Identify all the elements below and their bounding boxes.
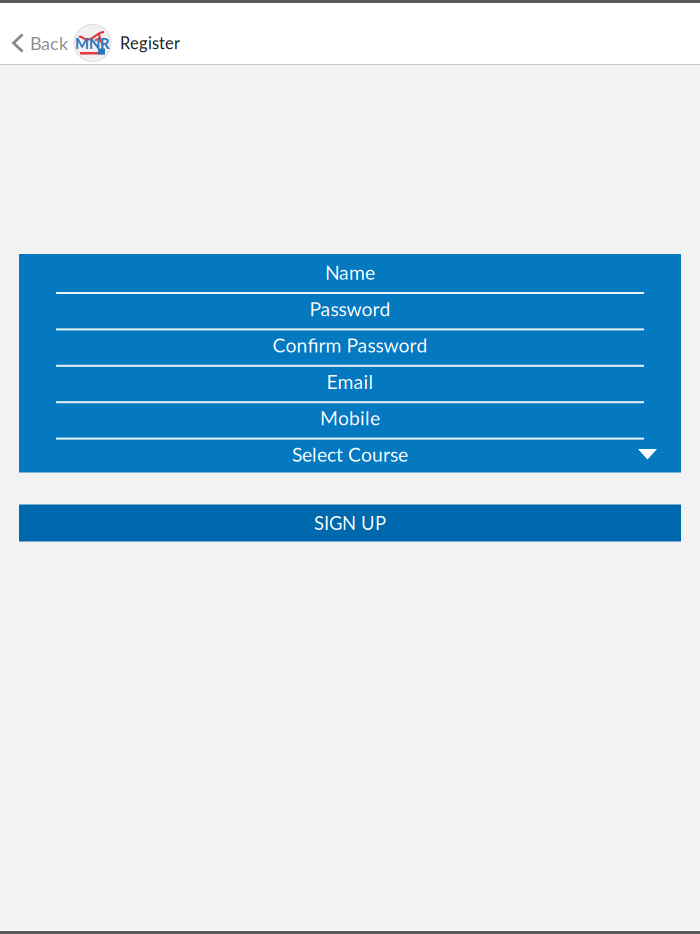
staticText: Email xyxy=(326,370,373,393)
staticText: Select Course xyxy=(292,443,408,466)
staticText: Password xyxy=(309,297,390,320)
staticText: MNR xyxy=(75,34,110,52)
staticText: Register xyxy=(120,33,180,53)
staticText: Confirm Password xyxy=(272,333,427,357)
staticText: Name xyxy=(325,261,375,284)
button[interactable]: SIGN UP xyxy=(19,504,681,541)
staticText: SIGN UP xyxy=(314,512,386,534)
staticText: Back xyxy=(30,32,68,54)
button[interactable]: Back xyxy=(0,24,74,62)
staticText: Mobile xyxy=(320,406,380,429)
